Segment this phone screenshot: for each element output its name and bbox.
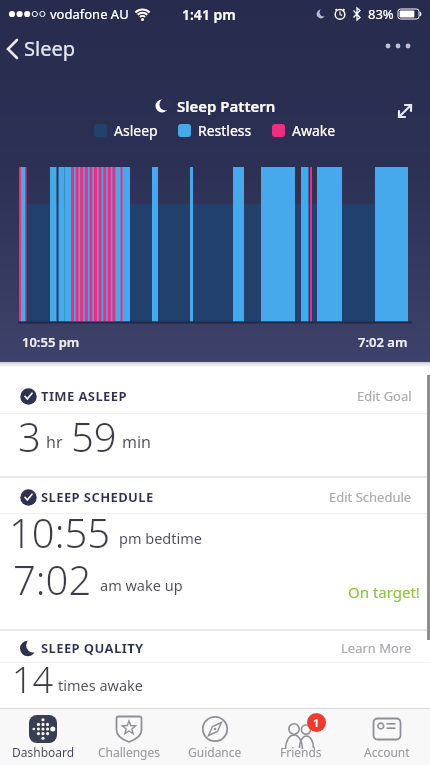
staticText: am wake up	[100, 575, 183, 595]
staticText: Challenges	[98, 744, 161, 760]
button[interactable]: Edit Goal	[357, 387, 412, 405]
button[interactable]: Edit Schedule	[329, 488, 412, 506]
staticText: SLEEP SCHEDULE	[41, 488, 154, 506]
staticText: SLEEP QUALITY	[41, 639, 144, 657]
staticText: 59	[71, 409, 117, 463]
button[interactable]: 1	[258, 708, 344, 765]
staticText: 10:55	[9, 505, 111, 559]
staticText: 1:41 pm	[182, 5, 236, 24]
staticText: On target!	[348, 582, 420, 602]
staticText: TIME ASLEEP	[41, 387, 127, 405]
staticText: 10:55 pm	[22, 333, 80, 351]
button[interactable]: Sleep	[0, 30, 75, 66]
button[interactable]: Challenges	[86, 708, 172, 765]
staticText: Awake	[292, 121, 336, 140]
staticText: min	[122, 431, 151, 453]
button[interactable]	[392, 100, 416, 124]
button[interactable]: Dashboard	[0, 708, 86, 765]
staticText: 7:02	[13, 552, 92, 606]
staticText: 83%	[368, 5, 394, 23]
staticText: pm bedtime	[119, 528, 202, 548]
staticText: hr	[46, 431, 63, 453]
button[interactable]: Account	[344, 708, 430, 765]
staticText: times awake	[58, 675, 144, 695]
staticText: 7:02 am	[358, 333, 408, 351]
staticText: Dashboard	[12, 744, 75, 760]
staticText: Friends	[280, 744, 322, 760]
staticText: Sleep Pattern	[177, 96, 276, 116]
staticText: Restless	[198, 121, 252, 140]
staticText: 3	[18, 409, 41, 463]
staticText: vodafone AU	[50, 5, 129, 23]
staticText: Sleep	[24, 35, 75, 62]
staticText: Guidance	[188, 744, 242, 760]
button[interactable]: Guidance	[172, 708, 258, 765]
button[interactable]: Learn More	[341, 639, 412, 657]
button[interactable]	[384, 40, 416, 52]
staticText: 14	[12, 655, 54, 704]
staticText: Account	[364, 744, 410, 760]
staticText: Asleep	[114, 121, 158, 140]
staticText: 1	[313, 715, 320, 730]
